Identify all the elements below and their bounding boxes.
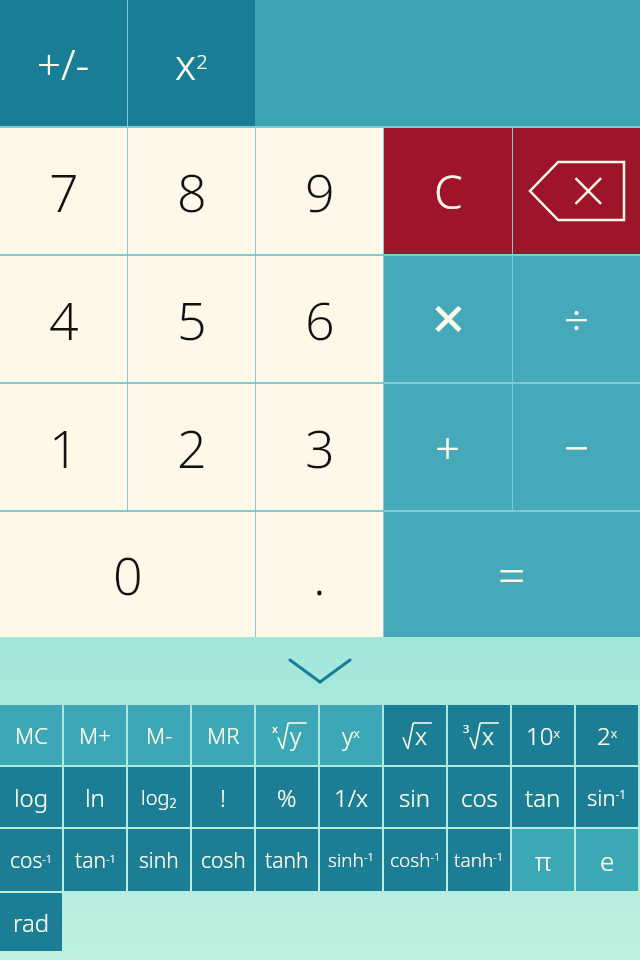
button[interactable]: = [384, 512, 640, 637]
button[interactable]: sinh-1 [320, 829, 382, 891]
button[interactable]: tan-1 [64, 829, 126, 891]
staticText: 8 [177, 156, 207, 227]
button[interactable]: 3 [256, 384, 383, 510]
staticText: ✕ [430, 294, 467, 345]
staticText: ln [85, 781, 105, 814]
staticText: 3 [305, 412, 335, 483]
button[interactable]: % [256, 767, 318, 827]
staticText: 5 [177, 284, 207, 355]
staticText: M- [146, 720, 173, 750]
button[interactable]: C [384, 128, 512, 254]
button[interactable]: log [0, 767, 62, 827]
button[interactable]: 1 [0, 384, 127, 510]
button[interactable]: 1/x [320, 767, 382, 827]
button[interactable]: 7 [0, 128, 127, 254]
button[interactable]: tan [512, 767, 574, 827]
staticText: tanh [265, 846, 309, 875]
staticText: tan [525, 781, 561, 814]
staticText: ! [220, 781, 226, 814]
staticText: 1/x [334, 781, 369, 814]
button[interactable]: 10x [512, 705, 574, 765]
staticText: 0 [113, 539, 143, 610]
staticText: x [482, 719, 495, 752]
button[interactable]: 8 [128, 128, 255, 254]
staticText: 3 [463, 721, 470, 736]
staticText: . [313, 539, 326, 610]
button[interactable]: cosh [192, 829, 254, 891]
staticText: cosh-1 [390, 847, 441, 873]
button[interactable]: 9 [256, 128, 383, 254]
button[interactable]: log₂ [128, 767, 190, 827]
button[interactable]: x [384, 705, 446, 765]
staticText: cosh [201, 846, 246, 875]
button[interactable]: ✕ [384, 256, 512, 382]
button[interactable]: π [512, 829, 574, 891]
button[interactable]: ! [192, 767, 254, 827]
staticText: log₂ [141, 784, 177, 811]
staticText: tan-1 [75, 846, 116, 875]
staticText: sin [399, 781, 431, 814]
button[interactable]: ÷ [513, 256, 640, 382]
button[interactable]: M- [128, 705, 190, 765]
button[interactable]: sin [384, 767, 446, 827]
button[interactable]: 2 [128, 384, 255, 510]
staticText: 7 [49, 156, 79, 227]
button[interactable]: cosh-1 [384, 829, 446, 891]
staticText: y [290, 719, 302, 752]
button[interactable]: cos-1 [0, 829, 62, 891]
button[interactable]: +/- [0, 0, 127, 126]
button[interactable]: − [513, 384, 640, 510]
staticText: 6 [305, 284, 335, 355]
staticText: 1 [49, 412, 79, 483]
staticText: 2x [597, 719, 618, 752]
button[interactable]: sinh [128, 829, 190, 891]
button[interactable]: Backspace [513, 128, 640, 254]
button[interactable]: rad [0, 893, 62, 951]
staticText: rad [13, 906, 50, 939]
staticText: C [434, 160, 463, 223]
button[interactable]: e [576, 829, 638, 891]
button[interactable]: yx [320, 705, 382, 765]
button[interactable]: tanh-1 [448, 829, 510, 891]
staticText: cos [461, 781, 498, 814]
staticText: M+ [79, 720, 111, 750]
button[interactable]: sin-1 [576, 767, 638, 827]
button[interactable]: 6 [256, 256, 383, 382]
staticText: sinh-1 [328, 847, 374, 873]
button[interactable]: x2 [128, 0, 255, 126]
button[interactable]: 3 [448, 705, 510, 765]
staticText: yx [342, 719, 360, 752]
button[interactable]: . [256, 512, 383, 637]
staticText: 9 [305, 156, 335, 227]
staticText: sin-1 [587, 782, 627, 812]
staticText: ÷ [564, 289, 590, 349]
button[interactable]: x [256, 705, 318, 765]
staticText: − [564, 417, 590, 477]
staticText: e [600, 843, 615, 878]
button[interactable]: M+ [64, 705, 126, 765]
staticText: 4 [49, 284, 79, 355]
button[interactable]: ln [64, 767, 126, 827]
button[interactable]: cos [448, 767, 510, 827]
button[interactable]: tanh [256, 829, 318, 891]
staticText: log [14, 781, 49, 814]
button[interactable]: MR [192, 705, 254, 765]
staticText: = [498, 542, 526, 607]
button[interactable]: 0 [0, 512, 255, 637]
staticText: % [277, 781, 297, 814]
button[interactable]: 5 [128, 256, 255, 382]
staticText: π [535, 843, 552, 878]
button[interactable]: 2x [576, 705, 638, 765]
button[interactable]: Collapse [0, 637, 640, 705]
button[interactable]: 4 [0, 256, 127, 382]
staticText: 2 [177, 412, 207, 483]
staticText: MR [207, 720, 240, 750]
staticText: MC [15, 720, 48, 750]
staticText: cos-1 [10, 846, 53, 875]
staticText: tanh-1 [454, 847, 504, 873]
staticText: x2 [175, 35, 208, 92]
staticText: 10x [526, 719, 560, 752]
staticText: x [272, 721, 278, 736]
button[interactable]: MC [0, 705, 62, 765]
button[interactable]: + [384, 384, 512, 510]
